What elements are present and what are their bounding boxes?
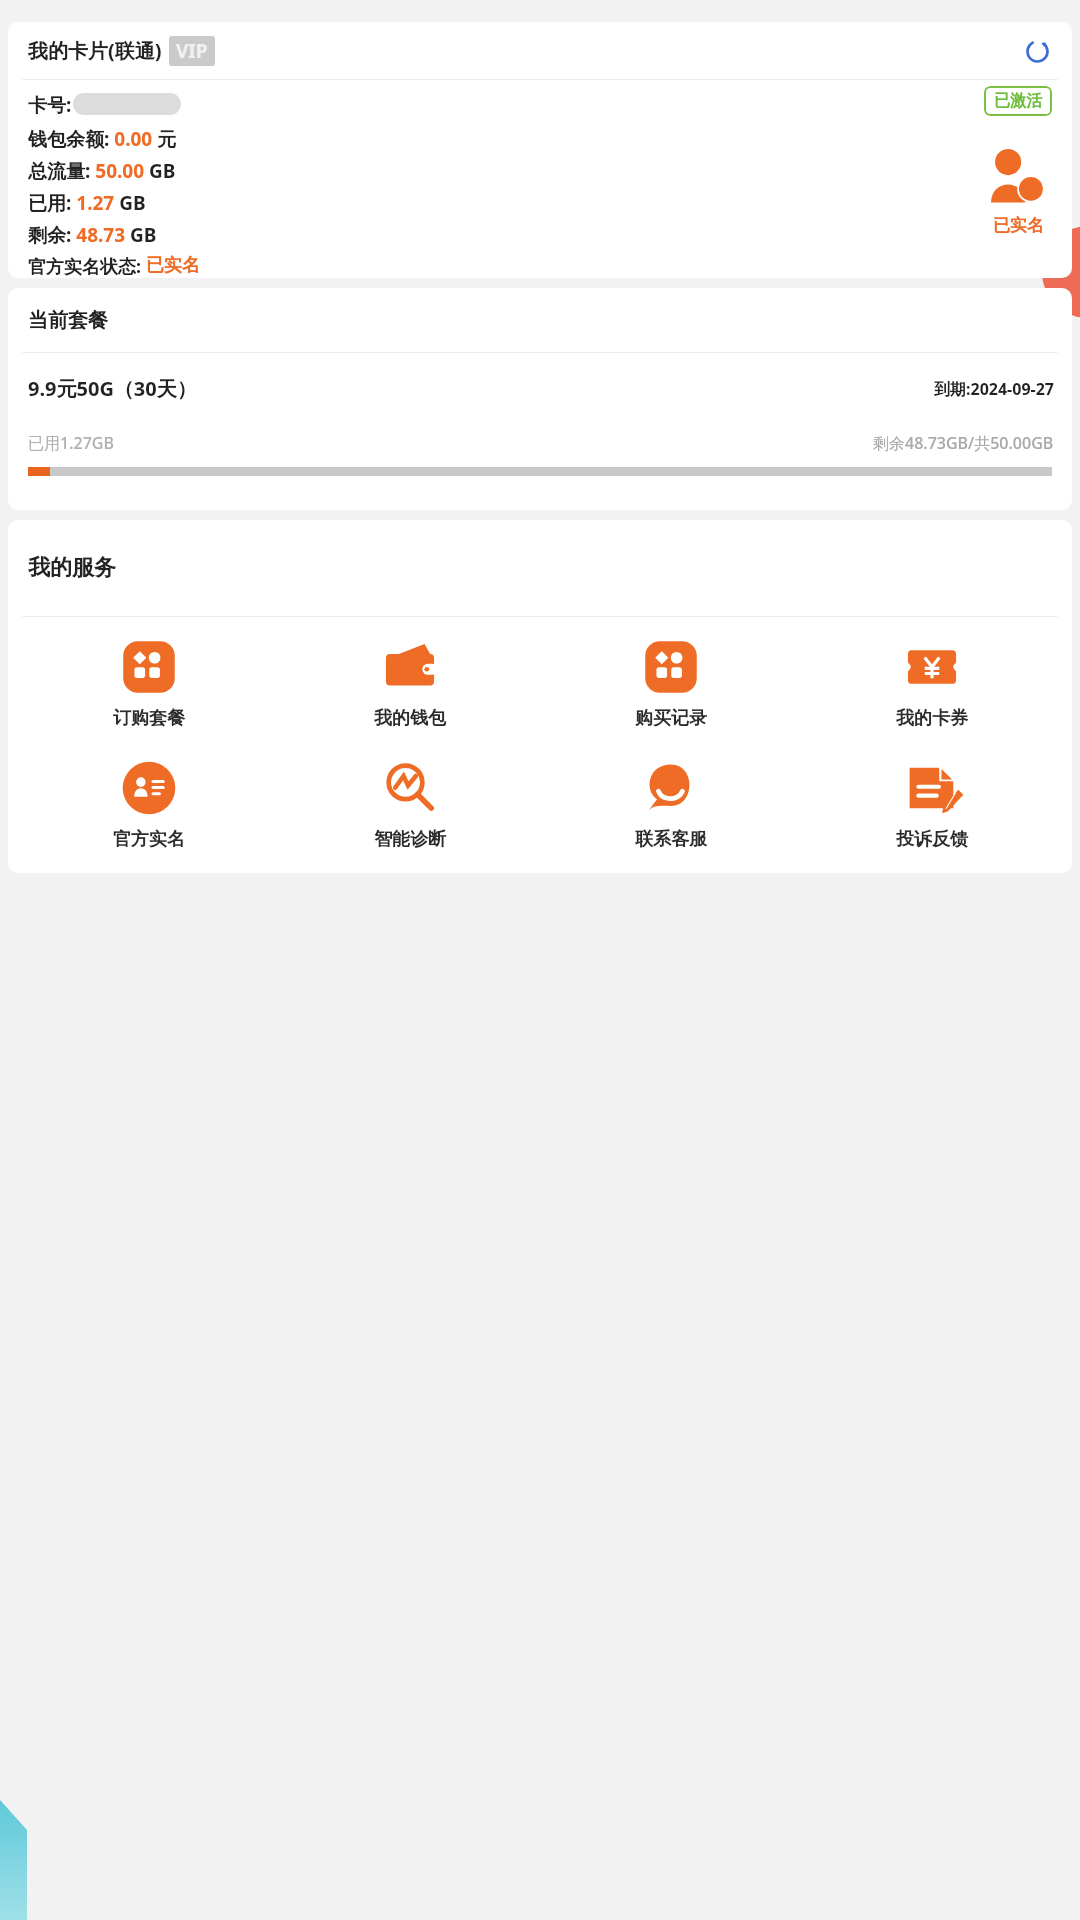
- button[interactable]: 订购套餐: [18, 635, 279, 734]
- staticText: 已实名: [146, 254, 200, 277]
- staticText: 已实名: [993, 215, 1044, 236]
- button[interactable]: 已激活: [984, 86, 1052, 116]
- staticText: 联系客服: [635, 828, 707, 851]
- staticText: 剩余: 48.73 GB: [28, 222, 157, 248]
- staticText: 智能诊断: [374, 828, 446, 851]
- staticText: 已激活: [994, 91, 1042, 111]
- button[interactable]: 联系客服: [540, 756, 801, 855]
- staticText: 卡号:: [28, 92, 72, 118]
- staticText: 总流量: 50.00 GB: [28, 158, 176, 184]
- staticText: VIP: [176, 38, 208, 64]
- staticText: 剩余48.73GB/共50.00GB: [873, 432, 1054, 454]
- button[interactable]: 智能诊断: [279, 756, 540, 855]
- staticText: 我的卡片(联通): [28, 37, 162, 64]
- staticText: 当前套餐: [28, 308, 108, 333]
- button[interactable]: 官方实名: [18, 756, 279, 855]
- staticText: 我的服务: [28, 554, 116, 582]
- staticText: 已用1.27GB: [28, 432, 114, 454]
- staticText: 到期:2024-09-27: [934, 378, 1054, 400]
- staticText: 9.9元50G（30天）: [28, 375, 197, 402]
- staticText: 官方实名: [113, 828, 185, 851]
- button[interactable]: 我的钱包: [279, 635, 540, 734]
- staticText: 购买记录: [635, 707, 707, 730]
- staticText: 官方实名状态:: [28, 254, 146, 278]
- staticText: 我的钱包: [374, 707, 446, 730]
- staticText: 钱包余额: 0.00 元: [28, 126, 177, 152]
- button[interactable]: Refresh: [1020, 34, 1054, 68]
- staticText: 订购套餐: [113, 707, 185, 730]
- staticText: 我的卡券: [896, 707, 968, 730]
- button[interactable]: 投诉反馈: [801, 756, 1062, 855]
- button[interactable]: 我的卡券: [801, 635, 1062, 734]
- staticText: 已用: 1.27 GB: [28, 190, 146, 216]
- staticText: 投诉反馈: [896, 828, 968, 851]
- button[interactable]: 购买记录: [540, 635, 801, 734]
